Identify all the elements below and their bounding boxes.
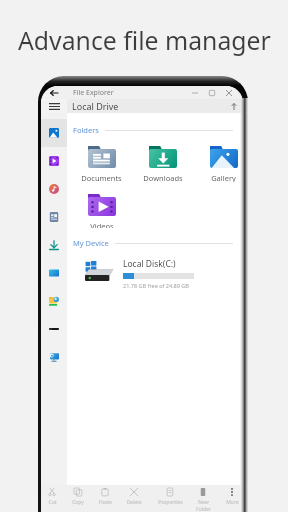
button[interactable]: Music: [41, 175, 67, 203]
button[interactable]: Menu: [41, 99, 67, 113]
button[interactable]: New Folder: [188, 485, 218, 512]
staticText: Paste: [99, 499, 112, 506]
staticText: Properties: [158, 499, 183, 506]
staticText: Local Disk(C:): [123, 258, 176, 270]
staticText: Documents: [81, 173, 122, 182]
button[interactable]: Delete: [119, 485, 149, 512]
staticText: Copy: [72, 499, 84, 506]
staticText: My Device: [73, 238, 109, 248]
button[interactable]: Videos: [71, 194, 132, 228]
staticText: New Folder: [196, 499, 211, 512]
staticText: More: [226, 499, 239, 506]
button[interactable]: Folders: [41, 259, 67, 287]
button[interactable]: USB: [41, 315, 67, 343]
staticText: File Explorer: [73, 88, 114, 98]
button[interactable]: Paste: [90, 485, 120, 512]
button[interactable]: Close: [220, 87, 237, 99]
button[interactable]: Properties: [155, 485, 185, 512]
button[interactable]: Documents: [41, 203, 67, 231]
button[interactable]: Gallery: [193, 146, 243, 182]
button[interactable]: Documents: [71, 146, 132, 182]
button[interactable]: Downloads: [41, 231, 67, 259]
button[interactable]: Up: [227, 100, 240, 113]
button[interactable]: Network: [41, 287, 67, 315]
staticText: Videos: [90, 221, 114, 228]
staticText: Downloads: [143, 173, 183, 182]
button[interactable]: This PC: [41, 343, 67, 371]
staticText: Cut: [48, 499, 57, 506]
staticText: Advance file manager: [18, 23, 271, 57]
staticText: Delete: [126, 499, 142, 506]
button[interactable]: Images: [41, 119, 67, 147]
staticText: Local Drive: [72, 100, 119, 112]
button[interactable]: Minimize: [186, 87, 203, 99]
button[interactable]: Back: [48, 87, 59, 99]
staticText: Folders: [73, 125, 99, 135]
button[interactable]: Downloads: [132, 146, 193, 182]
button[interactable]: Copy: [63, 485, 93, 512]
staticText: Gallery: [211, 173, 236, 182]
button[interactable]: Local Disk(C:): [67, 258, 243, 289]
button[interactable]: Maximize: [203, 87, 220, 99]
button[interactable]: More: [217, 485, 243, 512]
staticText: 21.78 GB free of 24.89 GB: [123, 282, 189, 289]
button[interactable]: Videos: [41, 147, 67, 175]
button[interactable]: Cut: [41, 485, 67, 512]
